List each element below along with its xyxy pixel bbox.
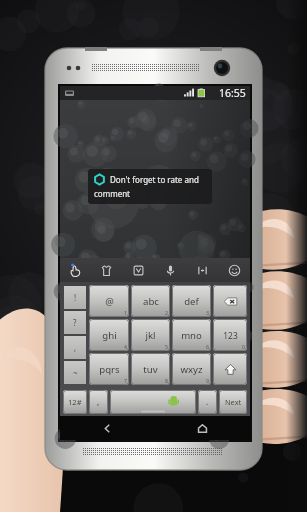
staticText: jkl <box>145 329 156 342</box>
staticText: Don't forget to rate and <box>110 174 199 185</box>
staticText: 9 <box>206 377 209 384</box>
staticText: , <box>74 342 77 353</box>
button[interactable]: Don't forget to rate and <box>88 169 212 204</box>
staticText: 16:55 <box>219 86 246 100</box>
button[interactable]: 123 <box>213 319 247 351</box>
staticText: ! <box>74 292 77 303</box>
button[interactable]: ~ <box>64 361 86 384</box>
button[interactable]: Theme <box>91 258 122 282</box>
button[interactable]: , <box>64 336 86 359</box>
button[interactable]: Home <box>155 416 250 440</box>
button[interactable]: . <box>198 390 217 414</box>
button[interactable]: @ <box>89 285 129 317</box>
staticText: 3 <box>206 309 209 316</box>
button[interactable]: wxyz <box>172 353 211 385</box>
button[interactable]: , <box>89 390 108 414</box>
staticText: mno <box>181 329 202 342</box>
button[interactable]: Handwriting <box>60 258 91 282</box>
staticText: 1 <box>124 309 127 316</box>
staticText: 4 <box>124 343 127 350</box>
staticText: tuv <box>143 363 158 376</box>
button[interactable]: Space <box>110 390 196 414</box>
button[interactable]: Backspace <box>213 285 247 317</box>
button[interactable]: ! <box>64 286 86 309</box>
button[interactable]: Emoji <box>218 258 250 282</box>
staticText: 2 <box>165 309 168 316</box>
button[interactable]: Resize <box>186 258 218 282</box>
staticText: 7 <box>124 377 127 384</box>
button[interactable]: 12# <box>63 390 87 414</box>
button[interactable]: ghi <box>89 319 129 351</box>
staticText: 12# <box>68 397 82 407</box>
button[interactable]: ? <box>64 311 86 334</box>
button[interactable]: pqrs <box>89 353 129 385</box>
button[interactable]: tuv <box>131 353 170 385</box>
staticText: 123 <box>223 330 238 341</box>
staticText: 5 <box>165 343 168 350</box>
button[interactable]: mno <box>172 319 211 351</box>
staticText: 8 <box>165 377 168 384</box>
staticText: 6 <box>206 343 209 350</box>
button[interactable]: Shift <box>213 353 247 385</box>
button[interactable]: abc <box>131 285 170 317</box>
staticText: wxyz <box>180 363 203 376</box>
button[interactable]: Back <box>60 416 155 440</box>
staticText: def <box>184 295 199 308</box>
staticText: Next <box>225 397 242 407</box>
button[interactable]: jkl <box>131 319 170 351</box>
staticText: 0 <box>242 343 245 350</box>
staticText: pqrs <box>99 363 120 376</box>
staticText: ? <box>73 317 77 328</box>
staticText: . <box>206 396 209 408</box>
staticText: comment <box>94 188 130 199</box>
button[interactable]: Next <box>219 390 247 414</box>
button[interactable]: Inbox <box>122 258 154 282</box>
button[interactable]: Voice input <box>154 258 186 282</box>
staticText: ghi <box>102 329 117 342</box>
staticText: ~ <box>73 367 78 378</box>
staticText: abc <box>143 295 159 308</box>
button[interactable]: def <box>172 285 211 317</box>
staticText: @ <box>105 295 114 308</box>
staticText: , <box>97 396 100 408</box>
